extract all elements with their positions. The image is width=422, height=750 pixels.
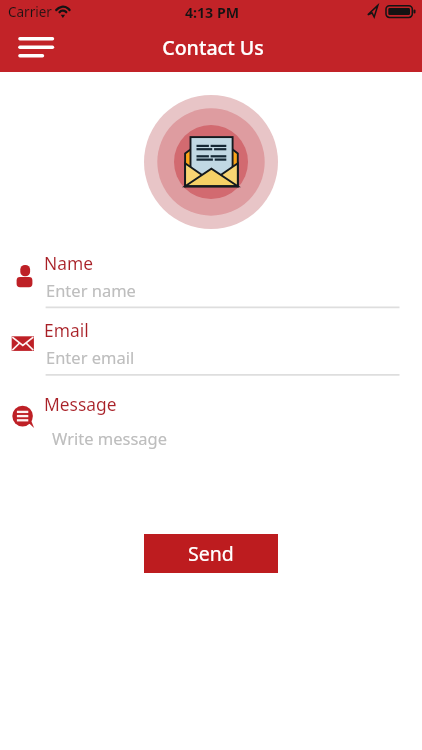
staticText: Message: [44, 392, 117, 416]
staticText: 4:13 PM: [1, 3, 422, 22]
staticText: Send: [188, 540, 234, 567]
staticText: Name: [44, 251, 94, 275]
button[interactable]: Message: [0, 391, 422, 453]
button[interactable]: Email: [0, 318, 422, 380]
staticText: Email: [44, 318, 89, 342]
staticText: Enter name: [46, 279, 136, 301]
staticText: Write message: [52, 427, 168, 449]
button[interactable]: Name: [0, 251, 422, 313]
staticText: Enter email: [46, 346, 135, 368]
staticText: Contact Us: [2, 34, 422, 61]
staticText: Carrier: [8, 3, 52, 21]
button[interactable]: Open navigation menu: [10, 28, 62, 66]
button[interactable]: Send: [144, 534, 278, 573]
